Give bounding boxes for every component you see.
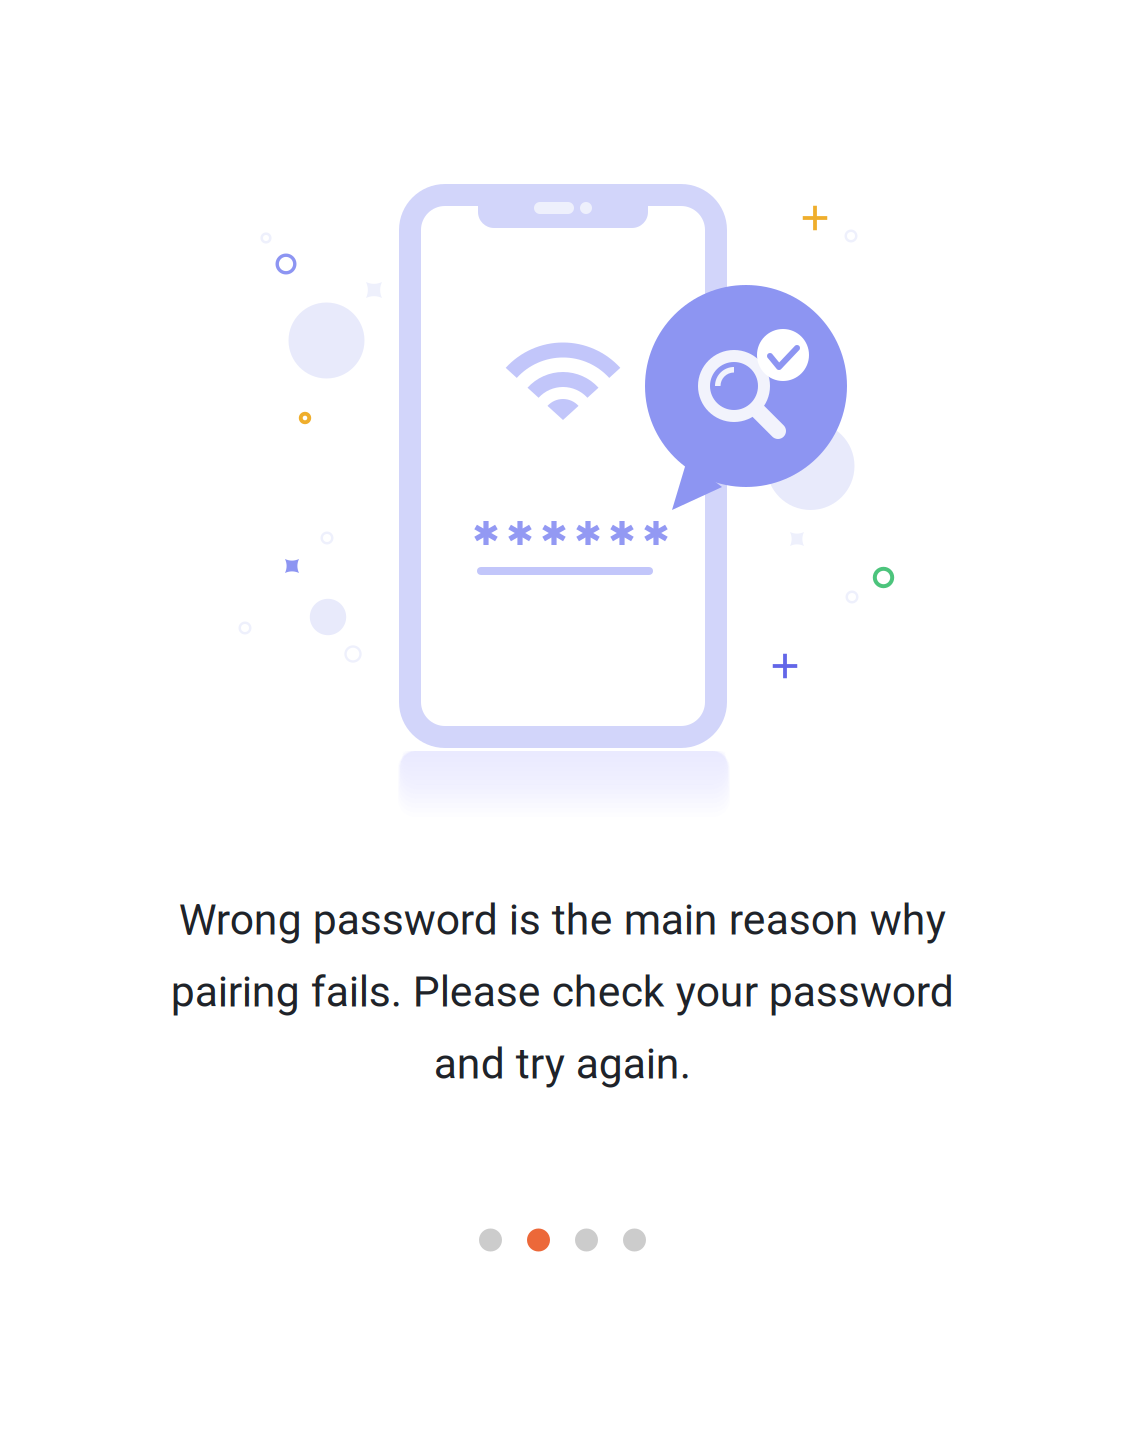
staticText: Wrong password is the main reason why pa… xyxy=(170,895,953,1089)
